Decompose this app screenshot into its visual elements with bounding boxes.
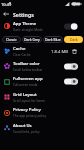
staticText: Settings xyxy=(13,11,34,18)
staticText: Scroll below toolbar xyxy=(13,68,43,72)
button[interactable]: Toggle xyxy=(64,63,78,70)
staticText: About Us xyxy=(13,123,32,129)
button[interactable]: Cache xyxy=(0,44,84,58)
button[interactable]: Fullscreen app xyxy=(0,74,84,89)
button[interactable]: Toggle xyxy=(64,78,78,85)
staticText: The app privacy policy xyxy=(13,114,47,118)
button[interactable]: Toggle xyxy=(64,23,78,30)
staticText: Fullscreen mode xyxy=(13,83,38,87)
button[interactable]: App Theme xyxy=(0,19,84,33)
button[interactable]: About Us xyxy=(0,120,84,136)
staticText: Fullscreen app xyxy=(13,76,43,82)
staticText: Toolbar color xyxy=(13,61,40,67)
staticText: Dark Grey xyxy=(24,37,40,42)
button[interactable]: Dark Grey xyxy=(22,36,42,43)
button[interactable]: Grid Layout xyxy=(0,89,84,105)
staticText: Dark: straight Mode xyxy=(13,28,43,32)
button[interactable]: Classic xyxy=(2,36,21,43)
staticText: Cache xyxy=(13,46,26,52)
staticText: App Theme xyxy=(13,21,37,27)
staticText: 1.8.4 MB xyxy=(51,49,69,55)
staticText: Clear Cache xyxy=(13,53,31,57)
staticText: Classic xyxy=(6,37,17,42)
button[interactable]: Privacy Policy xyxy=(0,105,84,120)
staticText: Grid Layout for home xyxy=(13,99,46,103)
button[interactable]: Dark xyxy=(64,36,83,43)
button[interactable]: Delete cache xyxy=(71,48,78,55)
staticText: Dark Blue xyxy=(45,37,61,42)
button[interactable]: Toolbar color xyxy=(0,58,84,74)
button[interactable]: Dark Blue xyxy=(43,36,63,43)
staticText: Social links, policy xyxy=(13,130,40,134)
staticText: Grid Layout xyxy=(13,92,37,98)
staticText: 10:49 xyxy=(1,2,12,7)
staticText: Dark xyxy=(70,37,78,42)
staticText: Privacy Policy xyxy=(13,107,41,113)
button[interactable]: Back xyxy=(1,9,11,19)
